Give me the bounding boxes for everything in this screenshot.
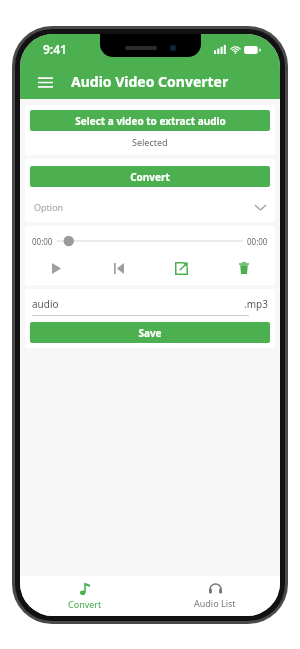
staticText: Select a video to extract audio (75, 114, 226, 128)
button[interactable]: Skip to start (100, 257, 138, 279)
staticText: audio (32, 297, 59, 311)
staticText: Option (34, 201, 64, 213)
button[interactable]: Play (37, 257, 75, 279)
staticText: Convert (130, 170, 170, 184)
staticText: .mp3 (244, 297, 268, 311)
staticText: Save (138, 326, 162, 340)
button[interactable]: Delete (225, 257, 263, 279)
staticText: 00:00 (247, 236, 268, 247)
button[interactable]: Playback position (57, 234, 243, 248)
button[interactable]: Audio List (150, 576, 280, 616)
button[interactable]: Open navigation menu (30, 67, 60, 97)
staticText: 9:41 (43, 41, 67, 57)
staticText: 00:00 (32, 236, 53, 247)
button[interactable]: Save (30, 322, 270, 343)
button[interactable]: Option (25, 201, 275, 213)
button[interactable]: audio (25, 297, 275, 311)
staticText: Audio Video Converter (71, 72, 229, 91)
button[interactable]: Select a video to extract audio (30, 110, 270, 131)
staticText: Audio List (194, 597, 236, 609)
button[interactable]: Convert (30, 166, 270, 187)
staticText: Convert (68, 598, 102, 610)
button[interactable]: Open in new (162, 257, 200, 279)
staticText: Selected (132, 136, 168, 148)
button[interactable]: Convert (20, 576, 150, 616)
